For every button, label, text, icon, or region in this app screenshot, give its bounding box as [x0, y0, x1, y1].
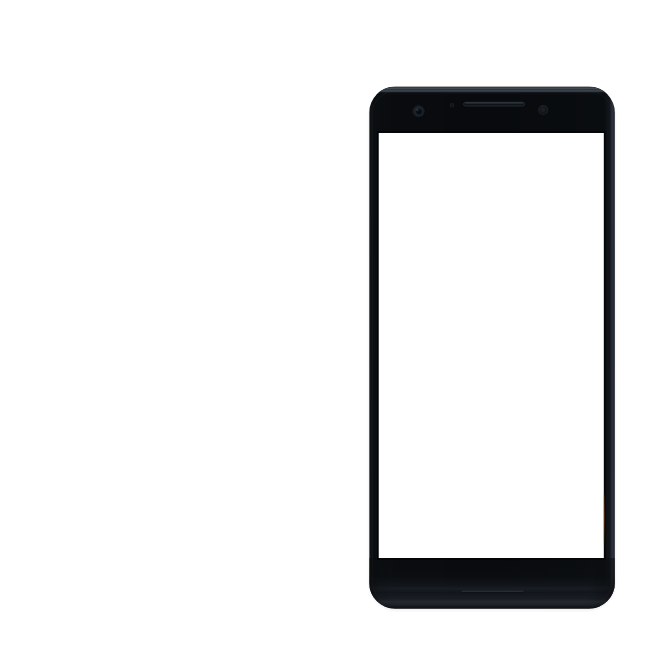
button[interactable]: Phone screen	[379, 133, 604, 558]
